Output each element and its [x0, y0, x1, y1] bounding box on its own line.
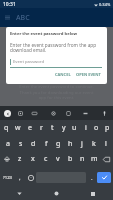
staticText: 10:31	[3, 1, 16, 8]
button[interactable]: OPEN EVENT	[75, 70, 102, 79]
button[interactable]: Settings	[48, 108, 58, 118]
button[interactable]: a	[1, 136, 14, 151]
button[interactable]: Clipboard	[80, 108, 90, 118]
button[interactable]: z	[13, 151, 26, 167]
staticText: o	[94, 123, 99, 133]
button[interactable]: o	[91, 120, 102, 136]
staticText: a	[6, 139, 10, 149]
staticText: s	[19, 139, 23, 149]
staticText: t	[51, 123, 54, 133]
staticText: Enter the event password below	[10, 31, 78, 37]
staticText: u	[72, 123, 77, 133]
staticText: k	[92, 139, 96, 149]
staticText: n	[80, 154, 85, 164]
staticText: Enter the event password from the app do…	[10, 42, 102, 54]
staticText: x	[31, 154, 35, 164]
button[interactable]: i	[80, 120, 91, 136]
staticText: r	[40, 123, 43, 133]
staticText: m	[91, 154, 98, 164]
button[interactable]: h	[64, 136, 76, 151]
button[interactable]: v	[52, 151, 64, 167]
button[interactable]: k	[88, 136, 100, 151]
button[interactable]: w	[12, 120, 24, 136]
staticText: ABC	[16, 13, 30, 23]
staticText: e	[28, 123, 32, 133]
button[interactable]: Expand toolbar	[4, 110, 11, 117]
staticText: OPEN EVENT	[76, 72, 101, 77]
button[interactable]: g	[52, 136, 64, 151]
staticText: w	[15, 123, 21, 133]
button[interactable]: .	[86, 172, 97, 183]
button[interactable]: Backspace	[100, 151, 113, 167]
button[interactable]: f	[40, 136, 52, 151]
staticText: v	[56, 154, 60, 164]
staticText: y	[62, 123, 66, 133]
button[interactable]: Emoji	[25, 172, 36, 183]
button[interactable]: l	[100, 136, 112, 151]
staticText: b	[68, 154, 73, 164]
button[interactable]: x	[26, 151, 39, 167]
button[interactable]: Home	[49, 187, 63, 200]
staticText: ?123	[3, 175, 13, 181]
staticText: l	[105, 139, 107, 149]
button[interactable]: Shift	[0, 151, 13, 167]
staticText: CANCEL	[55, 72, 71, 77]
button[interactable]: q	[0, 120, 12, 136]
staticText: .	[91, 174, 93, 182]
staticText: Event password	[13, 59, 44, 65]
button[interactable]: CANCEL	[53, 70, 73, 79]
button[interactable]: Themes	[63, 108, 73, 118]
staticText: i	[85, 123, 87, 133]
button[interactable]: j	[76, 136, 88, 151]
button[interactable]: d	[27, 136, 40, 151]
staticText: p	[105, 123, 110, 133]
button[interactable]: s	[14, 136, 27, 151]
staticText: c	[44, 154, 48, 164]
staticText: g	[56, 139, 61, 149]
button[interactable]: Recents	[86, 187, 100, 200]
button[interactable]: t	[47, 120, 58, 136]
staticText: f	[45, 139, 48, 149]
button[interactable]: b	[64, 151, 76, 167]
button[interactable]: GIF	[29, 108, 39, 118]
button[interactable]: c	[39, 151, 52, 167]
staticText: h	[68, 139, 73, 149]
button[interactable]: p	[102, 120, 113, 136]
button[interactable]: ,	[15, 172, 25, 183]
button[interactable]: Voice input	[99, 108, 109, 118]
button[interactable]: Stickers	[15, 108, 25, 118]
button[interactable]: Back	[12, 187, 26, 200]
button[interactable]: u	[69, 120, 80, 136]
button[interactable]: Menu	[2, 12, 13, 23]
staticText: d	[31, 139, 36, 149]
button[interactable]: Enter	[97, 172, 111, 183]
staticText: q	[4, 123, 9, 133]
staticText: j	[81, 139, 83, 149]
staticText: z	[18, 154, 22, 164]
button[interactable]: n	[76, 151, 88, 167]
staticText: 0.34%	[99, 2, 111, 7]
button[interactable]: y	[58, 120, 69, 136]
staticText: ,	[19, 174, 21, 182]
button[interactable]: m	[88, 151, 100, 167]
button[interactable]: r	[36, 120, 47, 136]
button[interactable]: e	[24, 120, 36, 136]
button[interactable]: ?123	[0, 172, 15, 183]
